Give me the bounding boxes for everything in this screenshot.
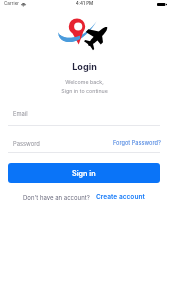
staticText: Sign in	[72, 169, 96, 178]
staticText: Password	[13, 140, 40, 147]
staticText: Login	[0, 61, 169, 72]
button[interactable]: Create account	[96, 193, 145, 201]
staticText: Welcome back,	[0, 79, 169, 85]
staticText: Sign in to continue	[0, 88, 169, 94]
staticText: Forgot Password?	[113, 140, 161, 147]
staticText: Carrier	[4, 1, 20, 7]
button[interactable]: Sign in	[8, 163, 160, 183]
staticText: 4:41 PM	[0, 1, 169, 7]
staticText: Don't have an account?	[23, 194, 90, 201]
staticText: Email	[13, 110, 28, 117]
staticText: Create account	[96, 193, 145, 201]
button[interactable]: Forgot Password?	[113, 140, 161, 147]
